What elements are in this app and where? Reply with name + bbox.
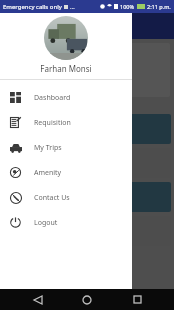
staticText: Due Amenity(%) xyxy=(8,85,32,96)
staticText: Approved xyxy=(9,126,30,132)
button[interactable]: Logout xyxy=(0,210,132,235)
staticText: Dashboard xyxy=(34,93,71,103)
button[interactable]: Farhan Monsi xyxy=(0,13,132,79)
button[interactable]: Approved xyxy=(3,182,171,212)
button[interactable]: Approved xyxy=(3,216,171,246)
button[interactable]: Dashboard xyxy=(0,85,132,110)
button[interactable]: 0 BDT xyxy=(4,43,170,97)
button[interactable]: Home xyxy=(75,289,99,310)
staticText: 100% xyxy=(120,3,135,10)
staticText: Approved xyxy=(9,194,30,200)
button[interactable]: Contact Us xyxy=(0,185,132,210)
staticText: Farhan Monsi xyxy=(40,63,92,74)
button[interactable]: Recent apps xyxy=(125,289,149,310)
staticText: Amenity xyxy=(34,168,62,178)
staticText: 2:11 p.m. xyxy=(147,3,171,10)
button[interactable]: Approved xyxy=(3,114,171,144)
staticText: Requisition xyxy=(34,118,71,128)
staticText: Contact Us xyxy=(34,193,70,203)
button[interactable]: Approved xyxy=(3,148,171,178)
button[interactable]: Amenity xyxy=(0,160,132,185)
staticText: Logout xyxy=(34,218,58,228)
button[interactable]: Back xyxy=(26,289,50,310)
staticText: My Trips xyxy=(34,143,62,153)
staticText: … xyxy=(70,3,75,11)
button[interactable]: Requisition xyxy=(0,110,132,135)
staticText: Emergency calls only xyxy=(3,3,62,11)
button[interactable]: My Trips xyxy=(0,135,132,160)
